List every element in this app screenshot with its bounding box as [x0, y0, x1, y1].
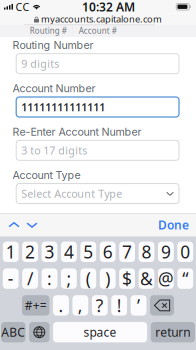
staticText: .: [58, 294, 63, 317]
button[interactable]: @: [158, 268, 174, 289]
button[interactable]: Previous field: [5, 213, 23, 236]
button[interactable]: ABC: [1, 322, 25, 342]
staticText: 5: [83, 240, 93, 263]
staticText: 6: [103, 240, 113, 263]
staticText: !: [117, 294, 122, 317]
button[interactable]: Account #: [73, 24, 122, 37]
staticText: 4: [64, 240, 74, 263]
button[interactable]: 11111111111111: [16, 97, 179, 117]
button[interactable]: space: [53, 322, 147, 342]
button[interactable]: .: [53, 295, 69, 316]
button[interactable]: :: [42, 268, 57, 289]
staticText: ;: [66, 267, 71, 290]
button[interactable]: !: [111, 295, 127, 316]
button[interactable]: -: [3, 268, 19, 289]
staticText: Account #: [79, 25, 117, 36]
staticText: 1: [6, 240, 16, 263]
staticText: space: [84, 324, 117, 340]
staticText: #+=: [25, 297, 47, 313]
staticText: 9 digits: [21, 57, 59, 71]
button[interactable]: 6: [100, 242, 116, 262]
staticText: 3 to 17 digits: [21, 143, 87, 157]
button[interactable]: &: [139, 268, 154, 289]
button[interactable]: ?: [92, 295, 108, 316]
staticText: ): [105, 267, 110, 290]
button[interactable]: 3: [42, 242, 57, 262]
staticText: Account Number: [13, 82, 96, 95]
button[interactable]: Next keyboard: [29, 322, 49, 342]
button[interactable]: ;: [61, 268, 77, 289]
button[interactable]: 5: [80, 242, 96, 262]
staticText: ABC: [1, 324, 25, 340]
button[interactable]: (: [80, 268, 96, 289]
staticText: &: [140, 267, 153, 290]
button[interactable]: ): [100, 268, 116, 289]
button[interactable]: ,: [72, 295, 88, 316]
staticText: CC: [15, 0, 29, 14]
staticText: $: [122, 267, 132, 290]
button[interactable]: Done: [158, 213, 189, 236]
button[interactable]: ’: [131, 295, 146, 316]
staticText: Select Account Type: [21, 186, 122, 201]
staticText: 0: [180, 240, 190, 263]
button[interactable]: Next field: [23, 213, 41, 236]
staticText: 11111111111111: [21, 100, 105, 114]
button[interactable]: 4: [61, 242, 77, 262]
button[interactable]: Routing #: [24, 24, 73, 37]
staticText: 10:32 AM: [82, 0, 135, 15]
staticText: Account Type: [13, 169, 81, 181]
staticText: 7: [122, 240, 132, 263]
staticText: ?: [96, 294, 104, 317]
button[interactable]: 7: [119, 242, 135, 262]
staticText: myaccounts.capitalone.com: [41, 13, 162, 25]
button[interactable]: 0: [177, 242, 193, 262]
button[interactable]: “: [177, 268, 193, 289]
button[interactable]: 9 digits: [16, 54, 179, 74]
staticText: -: [8, 267, 14, 290]
staticText: 2: [25, 240, 35, 263]
staticText: 9: [161, 240, 171, 263]
staticText: /: [27, 267, 33, 290]
staticText: Done: [158, 217, 189, 233]
button[interactable]: 9: [158, 242, 174, 262]
button[interactable]: #+=: [22, 295, 49, 316]
staticText: Routing Number: [13, 39, 94, 52]
staticText: Routing #: [30, 25, 67, 36]
button[interactable]: 8: [139, 242, 154, 262]
staticText: “: [182, 267, 188, 290]
staticText: @: [158, 267, 174, 290]
staticText: 8: [141, 240, 151, 263]
staticText: ’: [137, 294, 140, 317]
staticText: :: [47, 267, 52, 290]
button[interactable]: return: [151, 322, 195, 342]
staticText: 3: [44, 240, 54, 263]
button[interactable]: 1: [3, 242, 19, 262]
button[interactable]: Delete: [150, 295, 174, 316]
staticText: Re-Enter Account Number: [13, 125, 142, 138]
button[interactable]: /: [22, 268, 38, 289]
staticText: ,: [78, 294, 83, 317]
button[interactable]: 2: [22, 242, 38, 262]
staticText: (: [86, 267, 91, 290]
button[interactable]: $: [119, 268, 135, 289]
button[interactable]: Select Account Type: [16, 184, 179, 204]
staticText: return: [155, 324, 190, 340]
button[interactable]: 3 to 17 digits: [16, 140, 179, 160]
button[interactable]: myaccounts.capitalone.com: [0, 13, 196, 24]
